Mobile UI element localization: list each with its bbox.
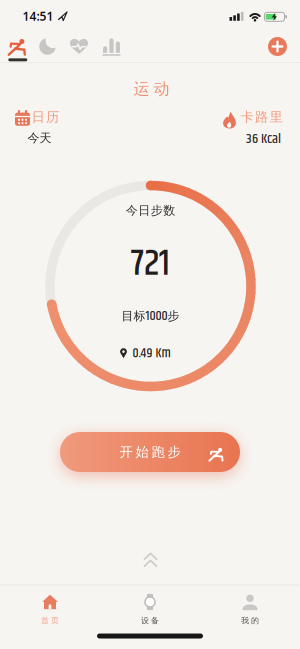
- staticText: 目标: [121, 309, 145, 323]
- staticText: 设 备: [141, 616, 159, 625]
- staticText: 运动: [133, 79, 169, 99]
- button[interactable]: 我 的: [215, 587, 285, 631]
- button[interactable]: 日历: [8, 103, 64, 131]
- staticText: 开始跑步: [119, 444, 180, 460]
- button[interactable]: [0, 30, 34, 60]
- staticText: 721: [131, 235, 170, 293]
- button[interactable]: [34, 33, 60, 59]
- button[interactable]: 设 备: [115, 587, 185, 631]
- staticText: 卡路里: [240, 109, 282, 125]
- button[interactable]: [99, 32, 124, 58]
- staticText: 14:51: [22, 8, 53, 24]
- button[interactable]: [266, 35, 288, 57]
- button[interactable]: 卡路里: [214, 103, 292, 131]
- button[interactable]: 开始跑步: [60, 430, 240, 474]
- staticText: 步: [167, 309, 179, 323]
- staticText: 日历: [31, 109, 59, 125]
- staticText: 我 的: [241, 616, 259, 625]
- staticText: 0.49 Km: [132, 343, 170, 364]
- staticText: 首 页: [41, 616, 59, 625]
- staticText: 36 Kcal: [246, 128, 281, 150]
- button[interactable]: 首 页: [15, 587, 85, 631]
- staticText: 今天: [27, 131, 51, 145]
- button[interactable]: [66, 33, 92, 59]
- staticText: 1000: [145, 306, 167, 326]
- staticText: 今日步数: [126, 203, 175, 218]
